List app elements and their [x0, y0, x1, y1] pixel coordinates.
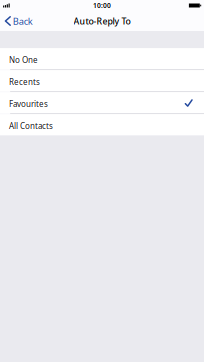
- staticText: Auto-Reply To: [73, 15, 130, 27]
- button[interactable]: All Contacts: [0, 114, 204, 135]
- staticText: 10:00: [93, 1, 111, 10]
- staticText: Favourites: [9, 99, 48, 109]
- staticText: No One: [9, 55, 38, 65]
- button[interactable]: No One: [0, 48, 204, 69]
- staticText: Recents: [9, 77, 40, 87]
- button[interactable]: Back: [0, 13, 37, 29]
- button[interactable]: Recents: [0, 70, 204, 91]
- staticText: All Contacts: [9, 121, 53, 131]
- button[interactable]: Favourites: [0, 92, 204, 113]
- staticText: Back: [13, 15, 33, 27]
